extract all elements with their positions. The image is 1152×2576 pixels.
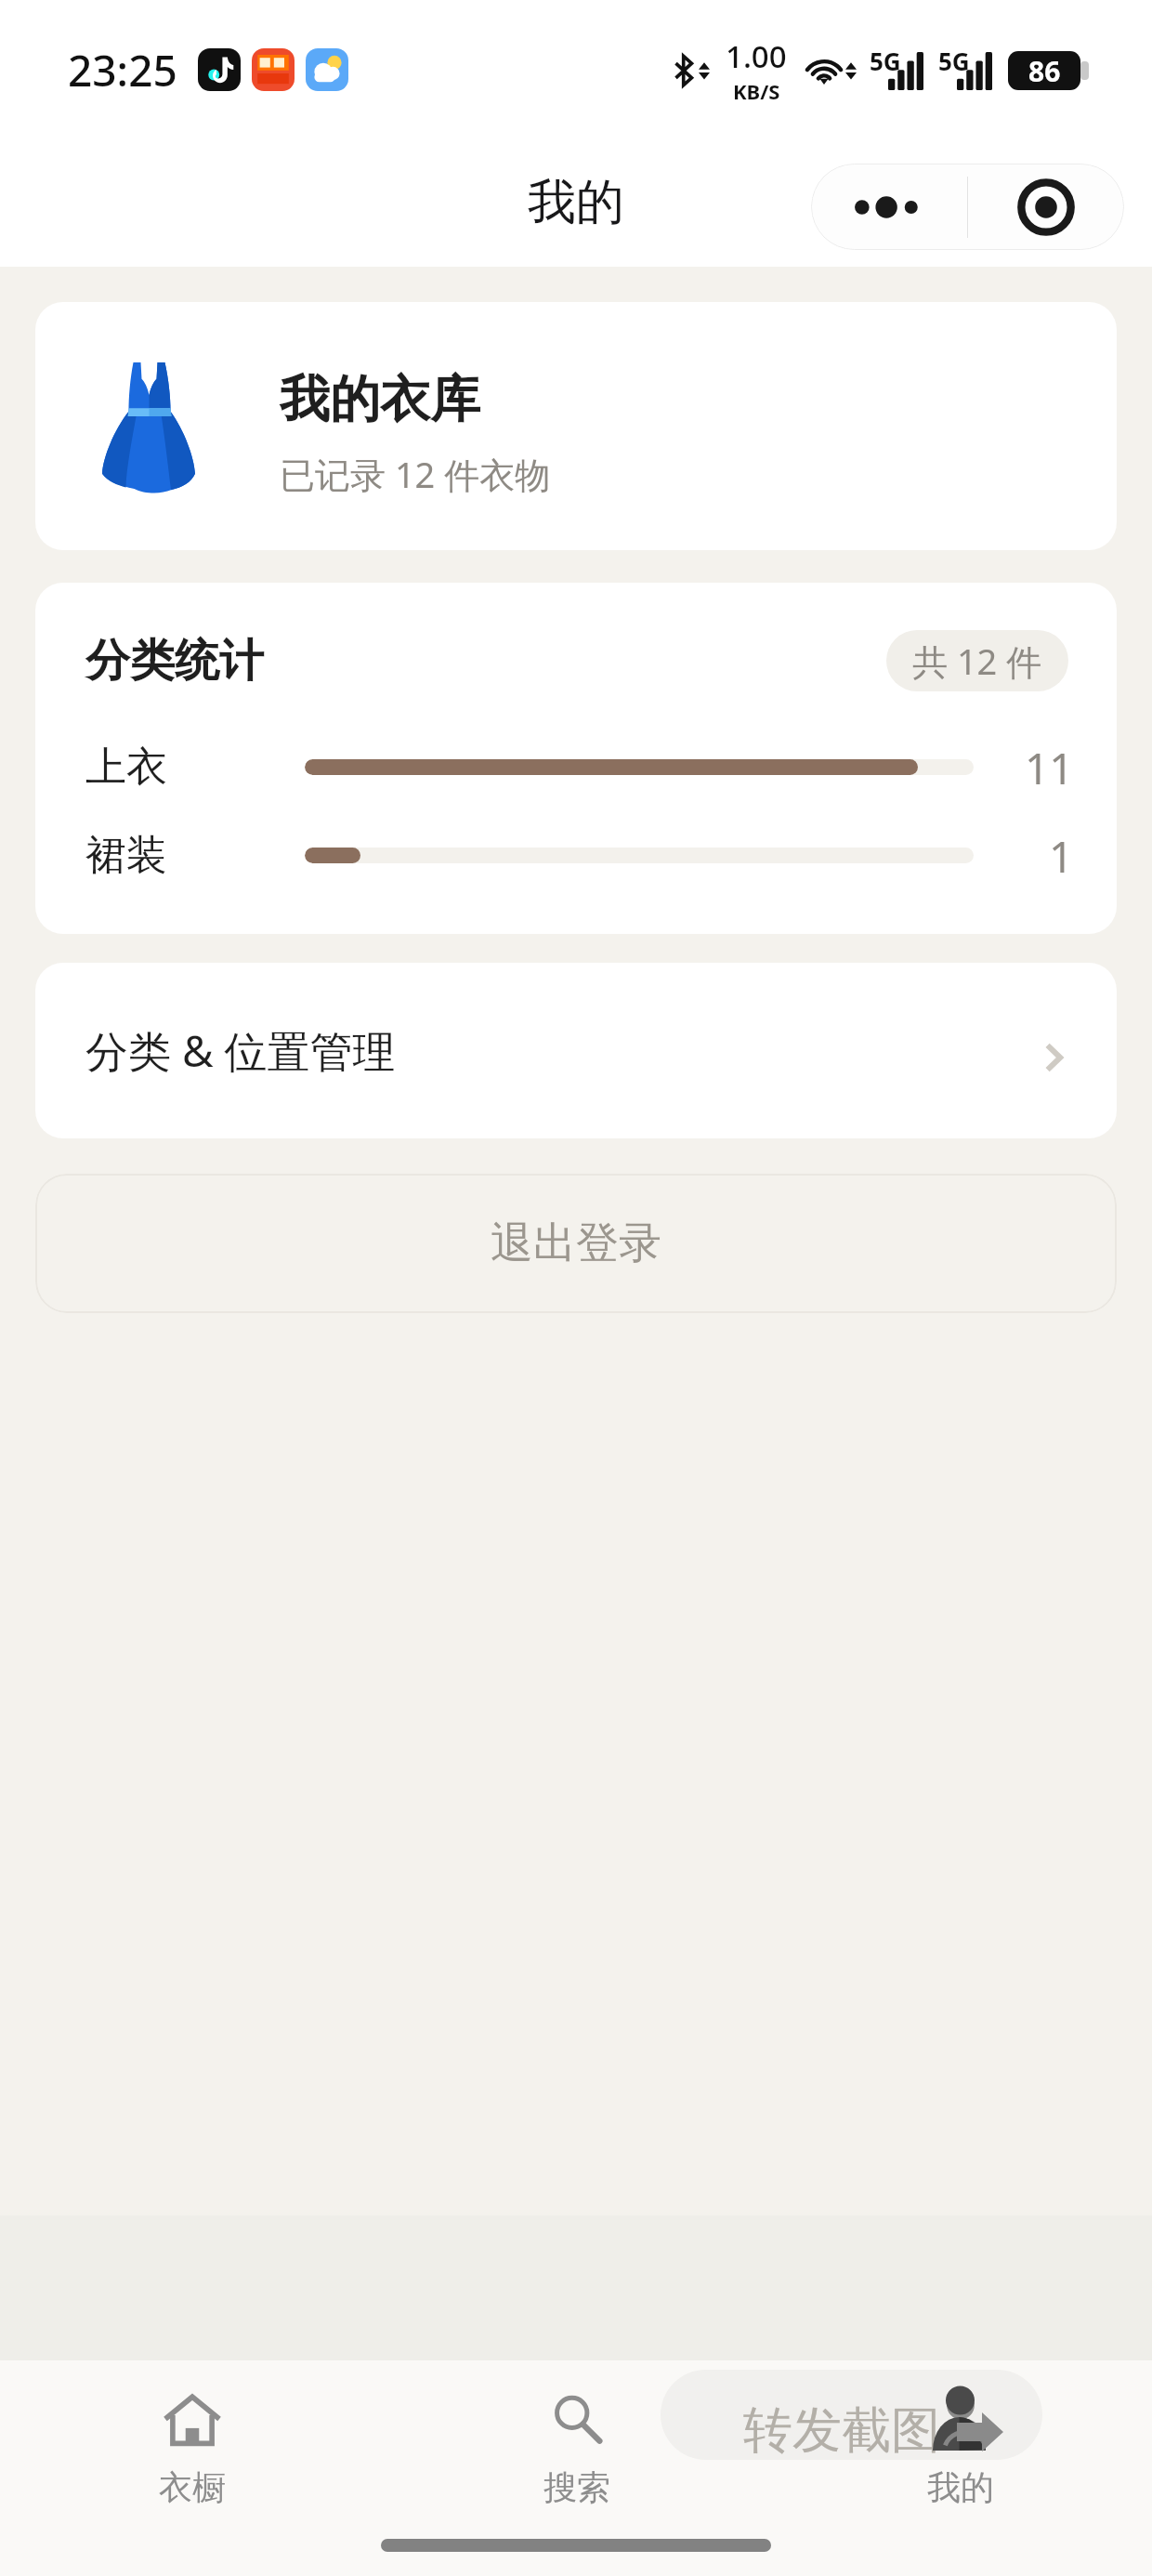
staticText: 已记录 12 件衣物 bbox=[280, 450, 551, 498]
button[interactable]: 我的衣库 bbox=[35, 302, 1117, 550]
staticText: 共 12 件 bbox=[912, 637, 1042, 685]
staticText: 1.00 bbox=[726, 35, 787, 77]
staticText: 我的 bbox=[528, 172, 624, 233]
staticText: 裙装 bbox=[85, 830, 167, 881]
staticText: 86 bbox=[1028, 52, 1061, 90]
staticText: 23:25 bbox=[68, 41, 177, 99]
button[interactable]: 搜索 bbox=[385, 2360, 768, 2523]
button[interactable]: 退出登录 bbox=[35, 1174, 1117, 1313]
button[interactable]: 转发截图 bbox=[661, 2370, 1042, 2460]
staticText: 上衣 bbox=[85, 742, 167, 793]
staticText: 我的衣库 bbox=[280, 368, 480, 431]
staticText: 分类 & 位置管理 bbox=[85, 1021, 396, 1080]
staticText: 退出登录 bbox=[491, 1216, 661, 1270]
staticText: 搜索 bbox=[543, 2466, 610, 2508]
staticText: KB/S bbox=[733, 77, 780, 105]
button[interactable]: 分类 & 位置管理 bbox=[35, 963, 1117, 1138]
staticText: 5G bbox=[938, 45, 970, 77]
staticText: 我的 bbox=[927, 2466, 994, 2508]
button[interactable]: 衣橱 bbox=[0, 2360, 385, 2523]
staticText: 分类统计 bbox=[85, 633, 264, 689]
staticText: 11 bbox=[1025, 739, 1074, 795]
staticText: 衣橱 bbox=[159, 2466, 226, 2508]
staticText: 转发截图 bbox=[743, 2399, 940, 2460]
button[interactable]: 我的 bbox=[768, 2360, 1152, 2523]
button[interactable]: More bbox=[811, 164, 967, 250]
staticText: 1 bbox=[1049, 827, 1074, 883]
staticText: 5G bbox=[870, 45, 901, 77]
button[interactable]: Close bbox=[968, 164, 1124, 250]
